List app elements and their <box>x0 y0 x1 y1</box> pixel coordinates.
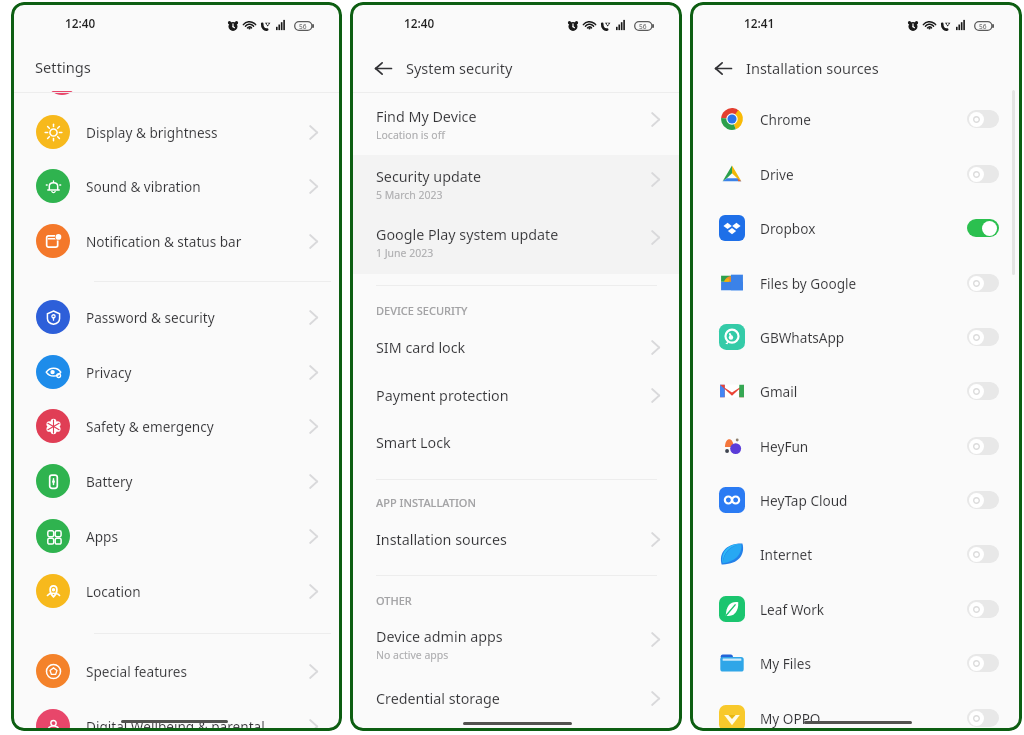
staticText: Safety & emergency <box>86 417 305 436</box>
button[interactable]: SIM card lock <box>350 327 682 367</box>
button[interactable]: Chrome <box>690 92 1022 146</box>
staticText: Payment protection <box>376 386 647 405</box>
button[interactable]: Toggle on <box>967 219 999 237</box>
button[interactable]: Security update <box>350 167 682 219</box>
button[interactable]: Safety & emergency <box>11 399 342 453</box>
staticText: Location is off <box>376 128 445 142</box>
staticText: Files by Google <box>760 274 967 293</box>
button[interactable]: Digital Wellbeing & parental <box>11 699 342 731</box>
staticText: Installation sources <box>746 58 879 78</box>
button[interactable]: Back <box>366 51 400 85</box>
button[interactable]: Special features <box>11 644 342 698</box>
staticText: 56 <box>299 22 307 31</box>
staticText: 12:40 <box>404 15 435 31</box>
button[interactable]: Toggle off <box>967 654 999 672</box>
staticText: Dropbox <box>760 219 967 238</box>
button[interactable]: Apps <box>11 509 342 563</box>
button[interactable]: GBWhatsApp <box>690 310 1022 364</box>
button[interactable]: Files by Google <box>690 256 1022 310</box>
staticText: Apps <box>86 527 305 546</box>
staticText: Find My Device <box>376 107 477 126</box>
staticText: System security <box>406 58 513 78</box>
staticText: Battery <box>86 472 305 491</box>
staticText: GBWhatsApp <box>760 328 967 347</box>
staticText: Digital Wellbeing & parental <box>86 717 305 731</box>
staticText: Google Play system update <box>376 225 559 244</box>
button[interactable]: Find My Device <box>350 107 682 159</box>
button[interactable]: Dropbox <box>690 201 1022 255</box>
button[interactable]: Password & security <box>11 290 342 344</box>
button[interactable]: Payment protection <box>350 375 682 415</box>
staticText: 56 <box>639 22 647 31</box>
staticText: Leaf Work <box>760 600 967 619</box>
button[interactable]: Notification & status bar <box>11 214 342 268</box>
staticText: HeyFun <box>760 437 967 456</box>
button[interactable]: Google Play system update <box>350 225 682 277</box>
button[interactable]: Toggle off <box>967 110 999 128</box>
staticText: Installation sources <box>376 530 647 549</box>
button[interactable]: Toggle off <box>967 165 999 183</box>
button[interactable]: Back <box>706 51 740 85</box>
staticText: 5 March 2023 <box>376 188 443 202</box>
staticText: My Files <box>760 654 967 673</box>
button[interactable]: Smart Lock <box>350 422 682 462</box>
button[interactable]: My OPPO <box>690 691 1022 731</box>
staticText: Drive <box>760 165 967 184</box>
button[interactable]: Toggle off <box>967 545 999 563</box>
button[interactable]: Toggle off <box>967 328 999 346</box>
button[interactable]: Toggle off <box>967 491 999 509</box>
staticText: Privacy <box>86 363 305 382</box>
staticText: 12:41 <box>744 15 775 31</box>
staticText: No active apps <box>376 648 449 662</box>
button[interactable]: Gmail <box>690 364 1022 418</box>
staticText: 56 <box>979 22 987 31</box>
staticText: Display & brightness <box>86 123 305 142</box>
button[interactable]: Toggle off <box>967 709 999 727</box>
staticText: Settings <box>35 57 91 77</box>
staticText: 12:40 <box>65 15 96 31</box>
button[interactable]: Credential storage <box>350 678 682 718</box>
staticText: Internet <box>760 545 967 564</box>
staticText: 1 June 2023 <box>376 246 434 260</box>
staticText: SIM card lock <box>376 338 647 357</box>
button[interactable]: Sound & vibration <box>11 159 342 213</box>
button[interactable]: Privacy <box>11 345 342 399</box>
button[interactable]: Display & brightness <box>11 105 342 159</box>
button[interactable]: Leaf Work <box>690 582 1022 636</box>
staticText: HeyTap Cloud <box>760 491 967 510</box>
staticText: DEVICE SECURITY <box>376 303 468 318</box>
staticText: Device admin apps <box>376 627 503 646</box>
button[interactable]: Internet <box>690 527 1022 581</box>
staticText: Password & security <box>86 308 305 327</box>
staticText: Security update <box>376 167 482 186</box>
button[interactable]: Toggle off <box>967 382 999 400</box>
button[interactable]: HeyTap Cloud <box>690 473 1022 527</box>
staticText: Location <box>86 582 305 601</box>
staticText: Special features <box>86 662 305 681</box>
staticText: Gmail <box>760 382 967 401</box>
staticText: Smart Lock <box>376 433 664 452</box>
button[interactable]: Installation sources <box>350 519 682 559</box>
button[interactable]: Battery <box>11 454 342 508</box>
staticText: APP INSTALLATION <box>376 495 477 510</box>
button[interactable]: Location <box>11 564 342 618</box>
staticText: Notification & status bar <box>86 232 305 251</box>
staticText: Sound & vibration <box>86 177 305 196</box>
staticText: Chrome <box>760 110 967 129</box>
button[interactable]: HeyFun <box>690 419 1022 473</box>
staticText: Credential storage <box>376 689 647 708</box>
button[interactable]: Toggle off <box>967 600 999 618</box>
staticText: My OPPO <box>760 709 967 728</box>
button[interactable]: Drive <box>690 147 1022 201</box>
button[interactable]: My Files <box>690 636 1022 690</box>
button[interactable]: Toggle off <box>967 437 999 455</box>
button[interactable]: Device admin apps <box>350 627 682 679</box>
staticText: OTHER <box>376 593 412 608</box>
button[interactable]: Toggle off <box>967 274 999 292</box>
